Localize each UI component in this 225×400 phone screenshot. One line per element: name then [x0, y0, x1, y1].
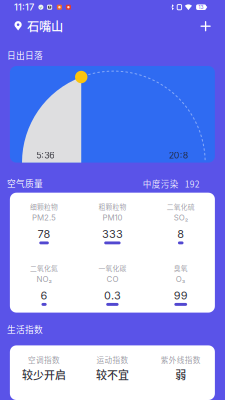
staticText: 臭氧: [174, 263, 188, 273]
staticText: 6: [41, 289, 48, 302]
staticText: 运动指数: [96, 354, 128, 365]
staticText: PM2.5: [32, 213, 56, 222]
staticText: O₃: [176, 274, 186, 284]
staticText: 11:17: [14, 1, 34, 13]
staticText: 粗颗粒物: [98, 202, 126, 211]
button[interactable]: 运动指数: [10, 345, 78, 400]
staticText: 20:8: [169, 150, 188, 161]
staticText: 78: [38, 227, 51, 241]
staticText: NO₂: [37, 274, 52, 284]
staticText: 13: [199, 4, 204, 10]
staticText: 紫外线指数: [161, 354, 201, 365]
button[interactable]: 空调指数: [10, 345, 78, 400]
staticText: PM10: [102, 213, 122, 222]
button[interactable]: 中度污染 192: [139, 175, 204, 193]
staticText: 较少开启: [22, 366, 66, 382]
staticText: 石嘴山: [27, 17, 63, 35]
button[interactable]: Add city: [197, 18, 214, 35]
staticText: 生活指数: [7, 323, 43, 335]
button[interactable]: 石嘴山: [3, 11, 73, 41]
staticText: 较不宜: [96, 366, 129, 382]
staticText: 0.3: [104, 289, 121, 302]
staticText: 空气质量: [7, 177, 43, 189]
button[interactable]: 紫外线指数: [10, 345, 78, 400]
staticText: CO: [106, 274, 118, 284]
staticText: 细颗粒物: [30, 202, 58, 211]
staticText: 二氧化硫: [167, 202, 195, 211]
staticText: 二氧化氮: [30, 263, 58, 273]
staticText: 中度污染 192: [143, 178, 200, 190]
staticText: 99: [174, 289, 188, 302]
staticText: SO₂: [174, 213, 188, 222]
staticText: 一氧化碳: [98, 263, 126, 273]
staticText: 日出日落: [7, 49, 43, 61]
staticText: 5:36: [36, 150, 54, 161]
staticText: 8: [177, 227, 184, 241]
staticText: 333: [102, 227, 123, 241]
staticText: 空调指数: [28, 354, 60, 365]
staticText: 弱: [175, 366, 186, 382]
